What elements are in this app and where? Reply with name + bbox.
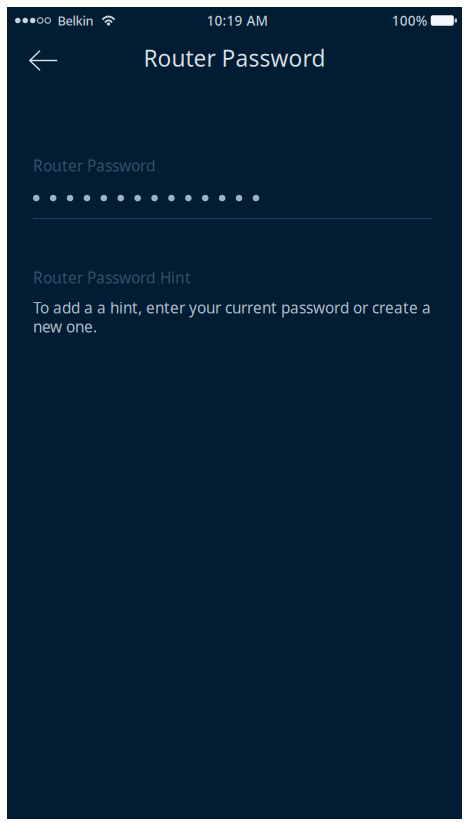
staticText: Belkin xyxy=(57,12,93,29)
button[interactable]: Back xyxy=(7,36,72,80)
staticText: 10:19 AM xyxy=(206,11,267,30)
staticText: 100% xyxy=(392,11,428,30)
staticText: Router Password Hint xyxy=(33,267,191,288)
staticText: Router Password xyxy=(143,43,325,73)
staticText: To add a a hint, enter your current pass… xyxy=(33,297,431,337)
staticText: Router Password xyxy=(33,155,156,176)
